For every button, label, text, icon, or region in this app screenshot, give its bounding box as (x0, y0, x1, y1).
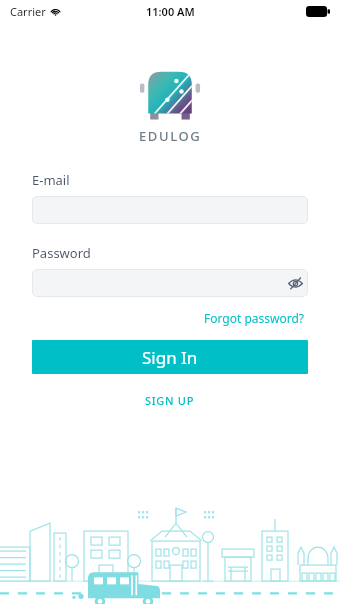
staticText: EDULOG (139, 127, 202, 145)
staticText: E-mail (32, 171, 70, 189)
staticText: Password (32, 244, 91, 262)
button[interactable]: Show password (32, 269, 308, 297)
button[interactable]: SIGN UP (141, 389, 199, 412)
staticText: Sign In (142, 346, 198, 369)
staticText: Carrier (10, 4, 46, 19)
button[interactable] (32, 196, 308, 224)
staticText: 11:00 AM (146, 4, 195, 19)
button[interactable]: Show password (282, 270, 308, 296)
button[interactable]: Sign In (32, 340, 308, 374)
button[interactable]: Forgot password? (201, 307, 308, 329)
